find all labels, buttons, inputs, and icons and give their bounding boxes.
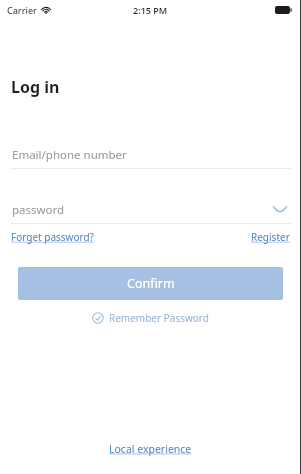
staticText: password	[12, 202, 65, 218]
button[interactable]: Forget password?	[11, 230, 94, 244]
staticText: Remember Password	[109, 311, 209, 325]
button[interactable]: Remember Password	[92, 311, 209, 325]
staticText: Confirm	[127, 275, 175, 292]
button[interactable]: Email/phone number	[10, 142, 291, 168]
button[interactable]: Register	[251, 230, 290, 244]
staticText: Carrier	[7, 4, 37, 16]
staticText: Log in	[11, 76, 60, 98]
staticText: Email/phone number	[12, 147, 127, 163]
button[interactable]: Confirm	[18, 267, 283, 300]
button[interactable]: Local experience	[109, 442, 192, 456]
staticText: Forget password?	[11, 230, 94, 244]
staticText: Register	[251, 230, 290, 244]
staticText: Local experience	[109, 442, 192, 456]
staticText: 2:15 PM	[133, 4, 168, 16]
button[interactable]: Show password	[269, 199, 291, 221]
button[interactable]: password	[10, 197, 291, 223]
